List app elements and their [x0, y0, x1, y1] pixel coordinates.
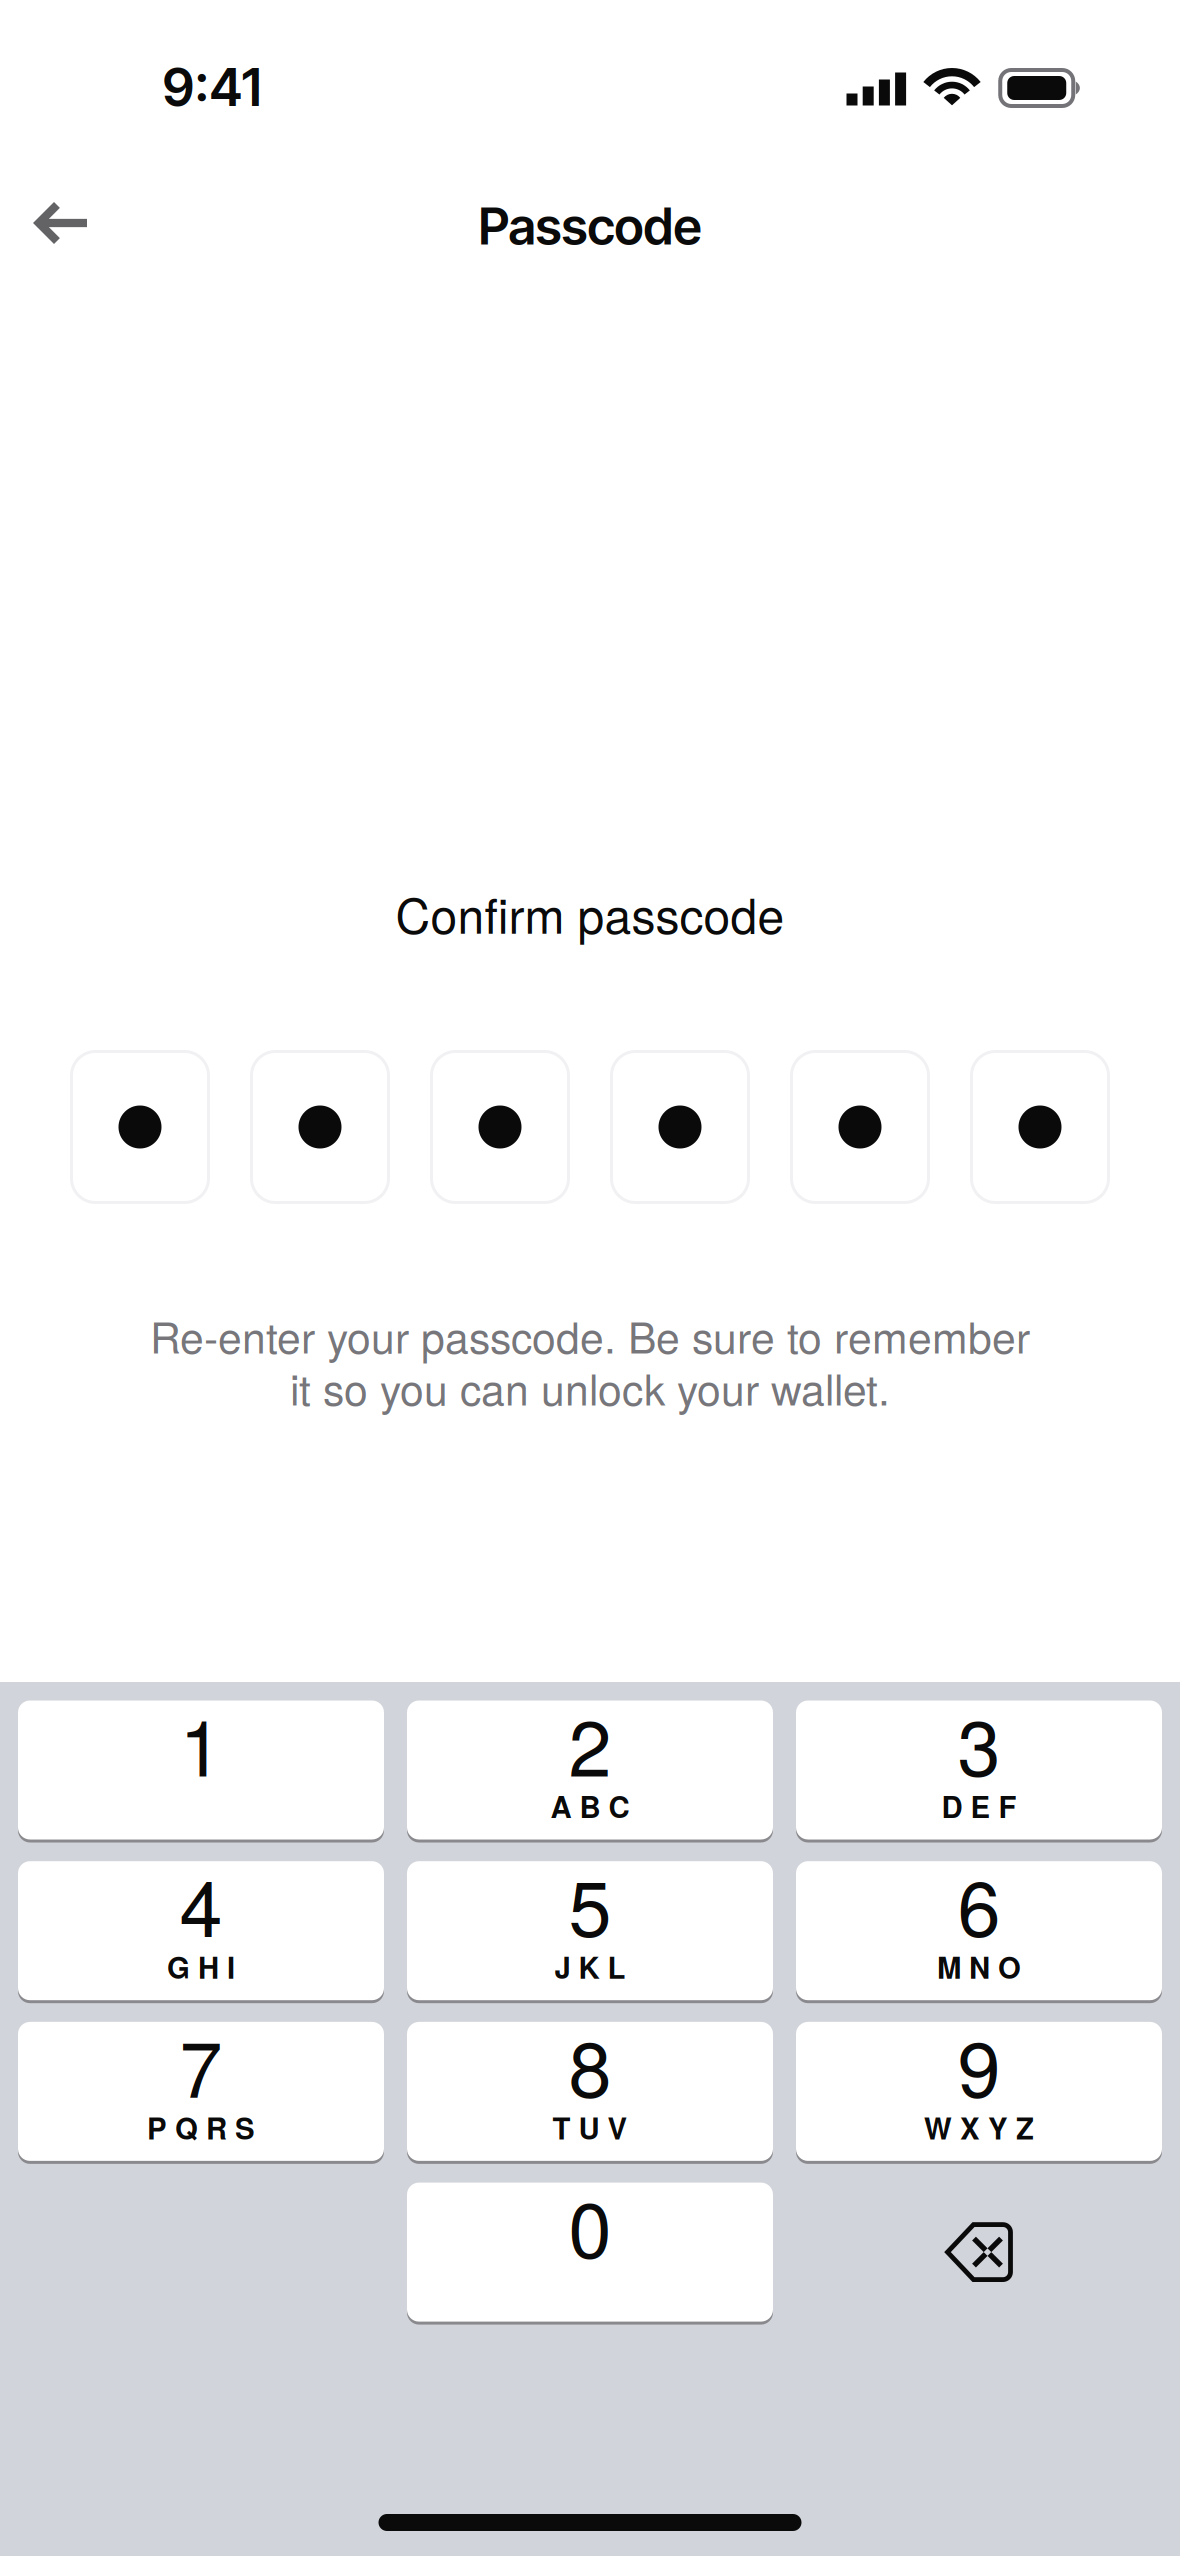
staticText: 6: [957, 1848, 1000, 1959]
staticText: 4: [179, 1848, 222, 1959]
staticText: Re-enter your passcode. Be sure to remem…: [150, 1304, 1030, 1366]
staticText: J K L: [554, 1946, 625, 1988]
staticText: Confirm passcode: [395, 879, 784, 947]
button[interactable]: Delete: [796, 2181, 1162, 2323]
staticText: 5: [568, 1848, 611, 1959]
staticText: T U V: [552, 2106, 627, 2148]
button[interactable]: 8: [407, 2020, 773, 2162]
staticText: 1: [179, 1688, 222, 1798]
button[interactable]: 4: [18, 1860, 384, 2002]
staticText: G H I: [167, 1946, 235, 1988]
button[interactable]: Back: [5, 173, 115, 273]
staticText: 7: [179, 2009, 222, 2120]
button[interactable]: 3: [796, 1699, 1162, 1841]
staticText: 2: [568, 1688, 611, 1798]
staticText: 0: [568, 2170, 611, 2280]
staticText: Passcode: [478, 195, 701, 257]
staticText: 3: [957, 1688, 1000, 1798]
button[interactable]: 9: [796, 2020, 1162, 2162]
button[interactable]: 6: [796, 1860, 1162, 2002]
staticText: it so you can unlock your wallet.: [290, 1356, 890, 1418]
staticText: A B C: [550, 1785, 629, 1827]
staticText: M N O: [937, 1946, 1021, 1988]
staticText: P Q R S: [147, 2106, 255, 2148]
staticText: 8: [568, 2009, 611, 2120]
button[interactable]: 5: [407, 1860, 773, 2002]
button[interactable]: 1: [18, 1699, 384, 1841]
button[interactable]: 0: [407, 2181, 773, 2323]
staticText: D E F: [941, 1785, 1016, 1827]
button[interactable]: 7: [18, 2020, 384, 2162]
staticText: W X Y Z: [924, 2106, 1034, 2148]
staticText: 9:41: [162, 55, 261, 118]
button[interactable]: 2: [407, 1699, 773, 1841]
staticText: 9: [957, 2009, 1000, 2120]
